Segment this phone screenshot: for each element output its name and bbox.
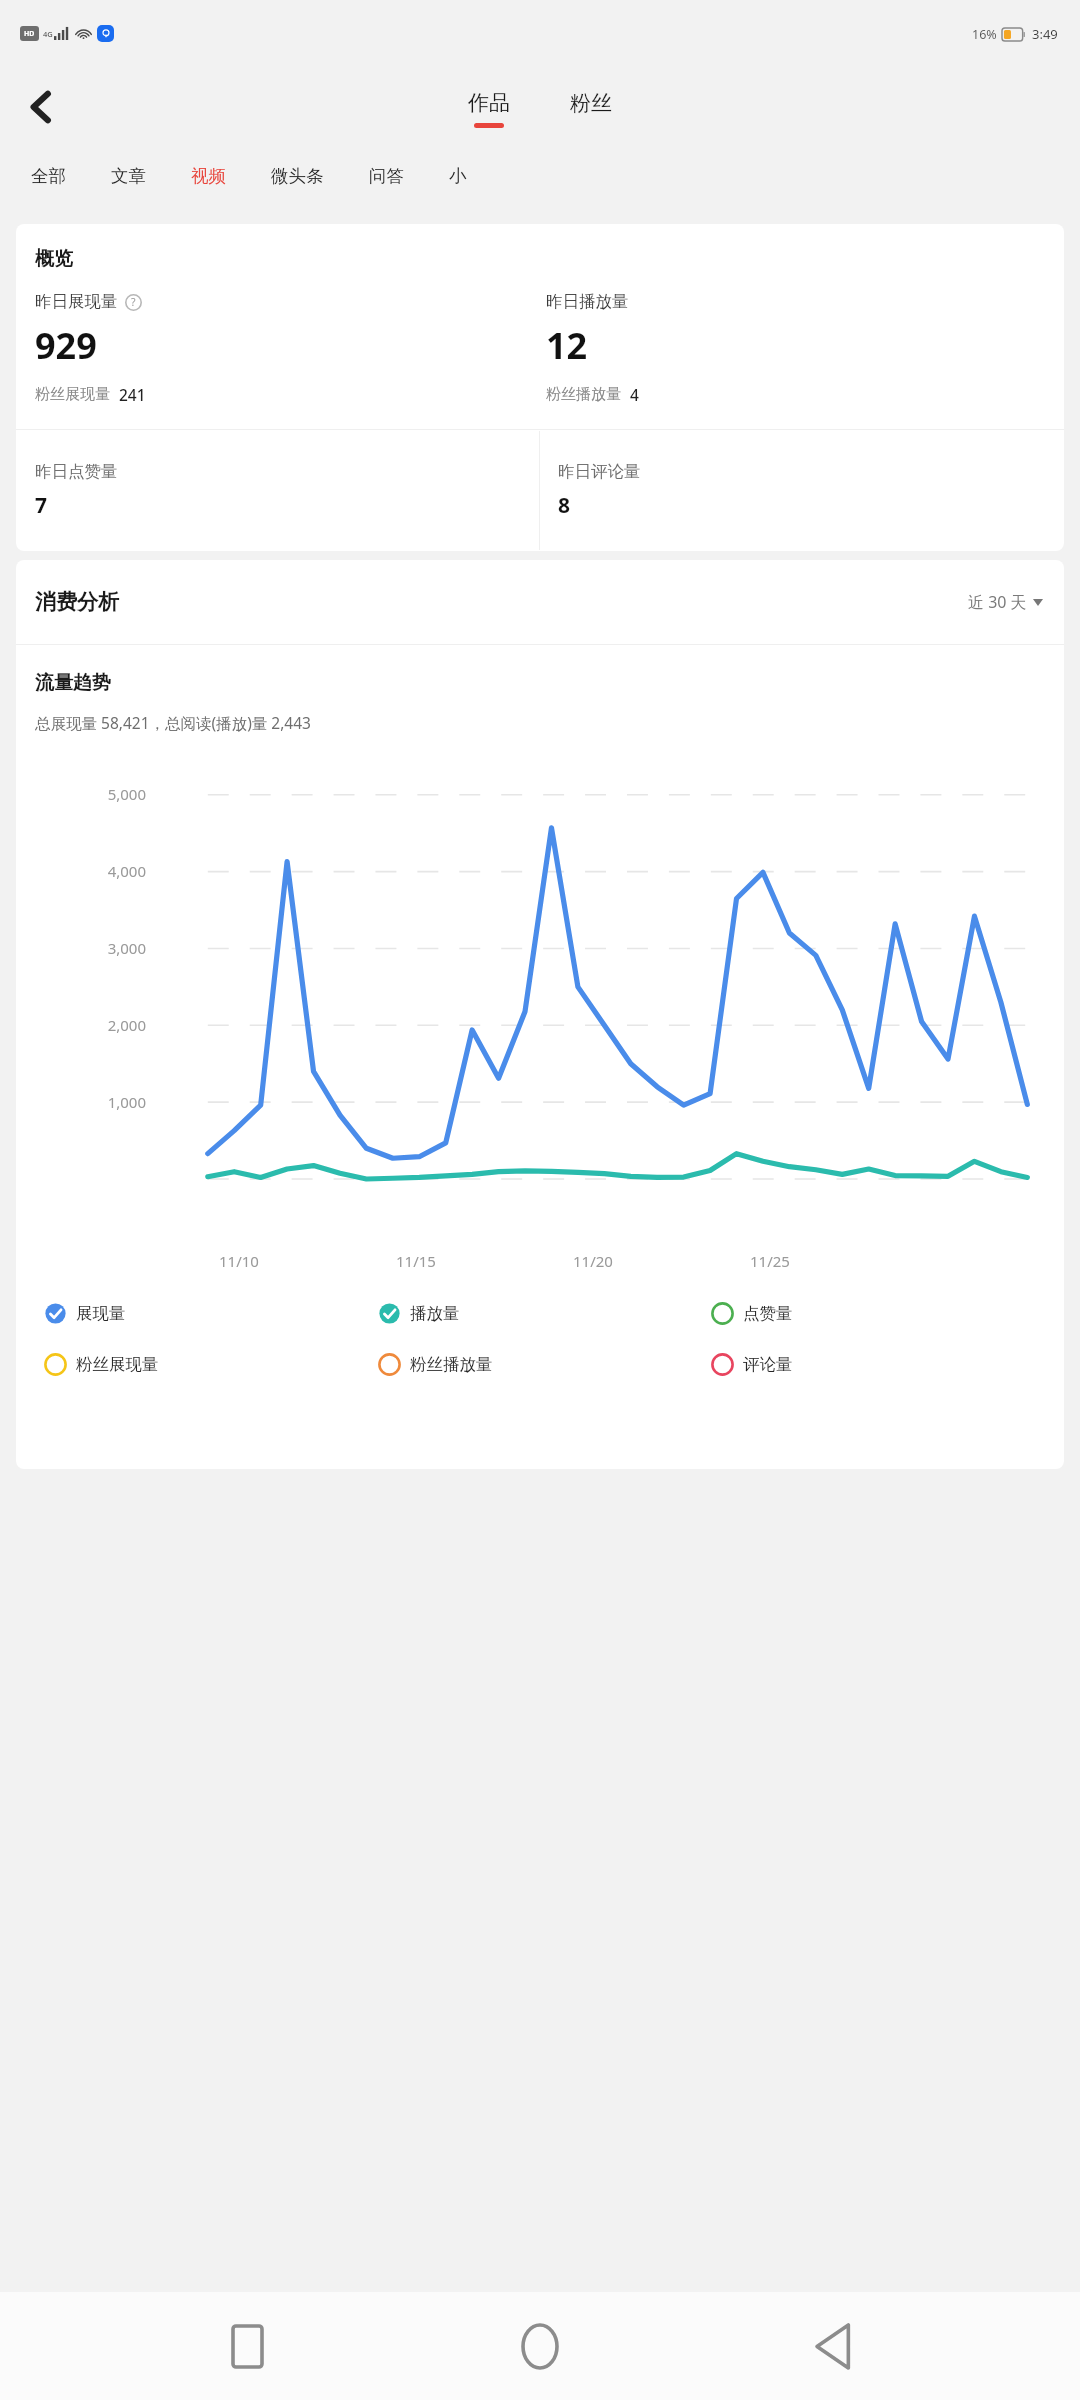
button[interactable]: 小 [435,159,481,193]
staticText: 消费分析 [35,589,119,615]
staticText: 昨日播放量 [546,291,629,312]
staticText: 评论量 [743,1354,793,1375]
button[interactable]: Recents [201,2300,293,2392]
staticText: ? [131,295,136,309]
staticText: 4G [43,29,53,39]
button[interactable]: Help [124,293,142,311]
staticText: 8 [558,491,571,520]
button[interactable]: Back [14,81,66,133]
staticText: 929 [35,321,97,370]
staticText: 16% [972,26,997,43]
staticText: 作品 [468,90,510,116]
staticText: 视频 [191,165,226,187]
staticText: 3:49 [1032,25,1058,43]
staticText: 1,000 [16,1092,146,1112]
staticText: 全部 [31,165,66,187]
staticText: 概览 [35,247,73,271]
button[interactable]: 近 30 天 [964,587,1047,617]
staticText: 7 [35,491,48,520]
staticText: 昨日评论量 [558,461,641,482]
staticText: 点赞量 [743,1303,793,1324]
button[interactable]: 视频 [177,159,240,193]
staticText: 文章 [111,165,146,187]
staticText: 11/15 [396,1251,573,1271]
staticText: 近 30 天 [968,591,1027,613]
staticText: 播放量 [410,1303,460,1324]
button[interactable]: 文章 [97,159,160,193]
button[interactable]: 评论量 [711,1350,1044,1379]
staticText: 粉丝展现量 [76,1354,159,1375]
staticText: 微头条 [271,165,324,187]
button[interactable]: 粉丝 [556,87,626,131]
staticText: 粉丝 [570,90,612,116]
button[interactable]: 全部 [17,159,80,193]
button[interactable]: 微头条 [257,159,338,193]
button[interactable]: 粉丝展现量 [44,1350,378,1379]
staticText: 问答 [369,165,404,187]
staticText: 展现量 [76,1303,126,1324]
staticText: 241 [119,384,146,405]
staticText: 粉丝播放量 [410,1354,493,1375]
staticText: 4,000 [16,861,146,881]
staticText: 昨日展现量 [35,291,118,312]
staticText: 11/10 [219,1251,396,1271]
staticText: 粉丝展现量 [35,385,110,404]
staticText: 2,000 [16,1015,146,1035]
staticText: 流量趋势 [35,671,111,695]
staticText: 4 [630,384,639,405]
button[interactable]: 展现量 [44,1299,378,1328]
staticText: 昨日点赞量 [35,461,118,482]
staticText: 11/25 [750,1251,927,1271]
staticText: 3,000 [16,938,146,958]
button[interactable]: 点赞量 [711,1299,1044,1328]
staticText: 小 [449,165,467,187]
staticText: HD [24,29,35,39]
staticText: 12 [546,321,588,370]
button[interactable]: 问答 [355,159,418,193]
staticText: 总展现量 58,421，总阅读(播放)量 2,443 [35,712,311,733]
button[interactable]: Back [787,2300,879,2392]
button[interactable]: 播放量 [378,1299,711,1328]
staticText: 5,000 [16,784,146,804]
staticText: 11/20 [573,1251,750,1271]
button[interactable]: 粉丝播放量 [378,1350,711,1379]
staticText: 粉丝播放量 [546,385,621,404]
button[interactable]: 作品 [454,87,524,131]
button[interactable]: Home [494,2300,586,2392]
